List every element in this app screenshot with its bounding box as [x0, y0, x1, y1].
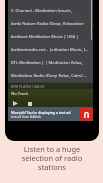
staticText: Meditation Radio (Deep Relax, Calm) ... — [11, 73, 87, 79]
staticText: Ambientradio.net - |editation Music, I..… — [11, 47, 89, 53]
staticText: Listen to a huge selection of radio stat… — [17, 144, 87, 172]
staticText: No Track — [11, 91, 29, 97]
button[interactable]: Nice job! You're displaying a test ad — [8, 107, 93, 121]
staticText: 3. Channel - Meditation (music, meditae.… — [11, 8, 90, 14]
button[interactable]: Ambientradio.net - |editation Music, I..… — [8, 43, 93, 56]
staticText: Ambi Nature Radio (Deep, Relaxation a... — [11, 21, 90, 27]
button[interactable]: Stop — [25, 99, 34, 108]
staticText: BPM PLAYER / RADIO — [11, 84, 45, 89]
button[interactable]: Ambient Meditation Music | USA | Ambi... — [8, 30, 93, 43]
staticText: Nice job! You're displaying a test ad — [11, 110, 71, 115]
button[interactable]: Play — [11, 99, 20, 108]
button[interactable]: Ambi Nature Radio (Deep, Relaxation a... — [8, 17, 93, 30]
staticText: Ambient Meditation Music | USA | Ambi... — [11, 34, 90, 40]
button[interactable]: Calm Radio - Meditation | Canada | Amb..… — [8, 0, 93, 4]
button[interactable]: 3. Channel - Meditation (music, meditae.… — [8, 4, 93, 17]
staticText: test ad from AdMob — [11, 115, 41, 119]
button[interactable]: RTL Meditation | | Meditation Relax, Q..… — [8, 56, 93, 69]
staticText: RTL Meditation | | Meditation Relax, Q..… — [11, 60, 90, 66]
button[interactable]: Meditation Radio (Deep Relax, Calm) ... — [8, 69, 93, 82]
